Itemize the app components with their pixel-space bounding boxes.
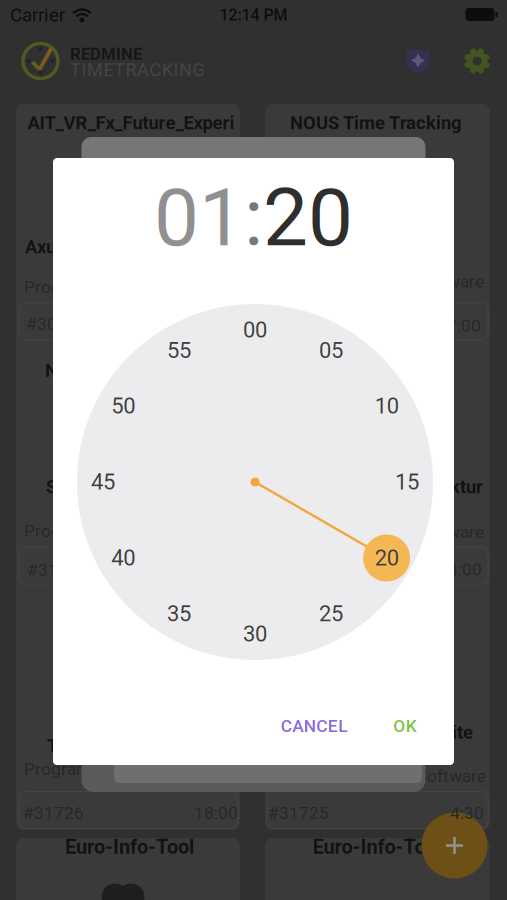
- button[interactable]: 50: [105, 387, 141, 425]
- staticText: 45: [91, 469, 115, 495]
- staticText: #31725: [268, 803, 329, 823]
- staticText: :: [244, 171, 263, 265]
- button[interactable]: 15: [389, 463, 425, 501]
- staticText: 20: [375, 545, 399, 571]
- staticText: REDMINE: [70, 44, 142, 64]
- staticText: 4:30: [450, 803, 484, 823]
- staticText: Programmierung / Software: [269, 271, 484, 292]
- button[interactable]: Favorites: [406, 49, 430, 74]
- staticText: 55: [167, 337, 191, 363]
- staticText: 50: [111, 393, 135, 419]
- staticText: Programmierung / Software: [24, 521, 239, 541]
- button[interactable]: 10: [369, 387, 405, 425]
- button[interactable]: CANCEL: [273, 708, 355, 744]
- button[interactable]: 00: [237, 311, 273, 349]
- staticText: 17:00: [437, 315, 481, 336]
- button[interactable]: 25: [313, 595, 349, 632]
- staticText: AIT_VR_Fx_Future_Experi: [27, 112, 234, 134]
- staticText: Softwareentwicklung: [46, 476, 222, 498]
- staticText: NOUS Infrastruktur: [326, 476, 483, 498]
- staticText: CANCEL: [281, 716, 347, 736]
- button[interactable]: OK: [385, 708, 425, 744]
- staticText: 05: [319, 337, 343, 363]
- staticText: 20: [263, 171, 353, 265]
- staticText: Programmierung / Software: [271, 766, 486, 786]
- button[interactable]: 30: [237, 615, 273, 653]
- staticText: 14:00: [438, 559, 482, 580]
- staticText: Programmierung / Software: [269, 522, 484, 542]
- button[interactable]: 40: [105, 539, 141, 577]
- staticText: Programmierung / Software: [24, 759, 239, 779]
- button[interactable]: Settings: [463, 47, 491, 75]
- button[interactable]: 35: [161, 595, 197, 632]
- staticText: Website: [407, 722, 473, 743]
- staticText: #31604: [27, 560, 88, 580]
- staticText: 40: [111, 545, 135, 571]
- staticText: Euro-Info-Tool: [312, 835, 441, 859]
- staticText: Carrier: [10, 4, 65, 26]
- staticText: Navision: [45, 360, 116, 381]
- staticText: Axure_Cloud_Deploy: [25, 236, 192, 258]
- button[interactable]: Add time entry: [421, 812, 487, 878]
- staticText: 35: [167, 601, 191, 626]
- staticText: OK: [393, 716, 417, 736]
- staticText: 18:00: [194, 803, 238, 823]
- staticText: Telefonie: [47, 735, 125, 757]
- staticText: TIMETRACKING: [70, 59, 204, 81]
- button[interactable]: 55: [161, 331, 197, 369]
- staticText: 30: [243, 621, 267, 647]
- button[interactable]: 20: [369, 539, 405, 577]
- staticText: #31726: [23, 803, 84, 823]
- button[interactable]: 05: [313, 331, 349, 369]
- staticText: 10: [375, 393, 399, 419]
- staticText: 12:14 PM: [219, 6, 287, 24]
- staticText: #30981: [26, 314, 87, 334]
- staticText: Euro-Info-Tool: [65, 835, 194, 859]
- staticText: 01: [154, 171, 244, 265]
- staticText: NOUS Time Tracking: [290, 112, 462, 134]
- button[interactable]: 45: [85, 463, 121, 501]
- staticText: 00: [243, 317, 267, 343]
- staticText: 15: [395, 469, 419, 495]
- staticText: 25: [319, 601, 343, 626]
- staticText: Programmierung / Software: [24, 277, 239, 297]
